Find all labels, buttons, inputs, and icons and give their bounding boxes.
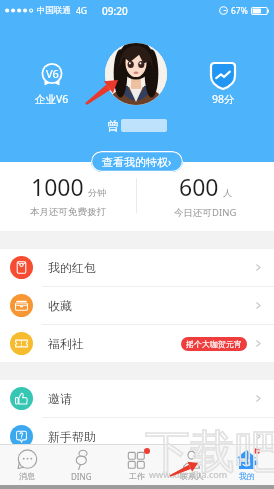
button[interactable]: 企业V6 xyxy=(30,59,74,106)
button[interactable]: 福利社 xyxy=(0,325,274,362)
button[interactable]: 邀请 xyxy=(0,380,274,417)
staticText: 工作 xyxy=(129,471,145,481)
staticText: 福利社 xyxy=(48,336,84,351)
staticText: 600 xyxy=(179,171,219,202)
button[interactable]: 我的红包 xyxy=(0,249,274,286)
button[interactable]: 收藏 xyxy=(0,287,274,324)
staticText: 企业V6 xyxy=(35,92,69,106)
staticText: 我的红包 xyxy=(48,260,96,275)
staticText: DING xyxy=(71,471,92,482)
staticText: 本月还可免费拨打 xyxy=(30,206,106,218)
staticText: V6 xyxy=(46,66,59,81)
staticText: 消息 xyxy=(19,471,35,481)
button[interactable]: 消息 xyxy=(0,445,54,485)
staticText: 今日还可DING xyxy=(174,206,237,219)
staticText: 98分 xyxy=(212,92,235,106)
staticText: 09:20 xyxy=(102,4,128,18)
staticText: 查看我的特权› xyxy=(102,154,172,169)
button[interactable]: 1000 xyxy=(0,162,136,218)
staticText: 收藏 xyxy=(48,298,72,313)
button[interactable]: DING xyxy=(54,445,109,485)
staticText: 1000 xyxy=(31,171,84,202)
staticText: 邀请 xyxy=(48,391,72,406)
staticText: 下载吧 xyxy=(145,424,274,481)
button[interactable]: Avatar xyxy=(105,43,167,105)
staticText: 4G xyxy=(76,5,88,17)
staticText: 摇个大咖贺元宵 xyxy=(186,339,242,349)
button[interactable]: 我的 xyxy=(219,445,274,485)
staticText: 67% xyxy=(231,5,248,17)
staticText: 联系人 xyxy=(180,471,204,481)
staticText: 曾 xyxy=(107,118,119,133)
button[interactable]: 98分 xyxy=(201,59,245,106)
staticText: 我的 xyxy=(239,471,255,481)
button[interactable]: 查看我的特权› xyxy=(91,151,183,172)
staticText: 新手帮助 xyxy=(48,429,96,444)
button[interactable]: 600 xyxy=(137,162,274,219)
staticText: 分钟 xyxy=(88,187,106,198)
button[interactable]: 联系人 xyxy=(164,445,219,485)
staticText: www.xiazaiba.com xyxy=(149,468,228,480)
button[interactable]: 工作 xyxy=(109,445,164,485)
button[interactable]: 新手帮助 xyxy=(0,418,274,455)
staticText: 中国联通 xyxy=(37,5,71,16)
staticText: 人 xyxy=(223,187,232,198)
